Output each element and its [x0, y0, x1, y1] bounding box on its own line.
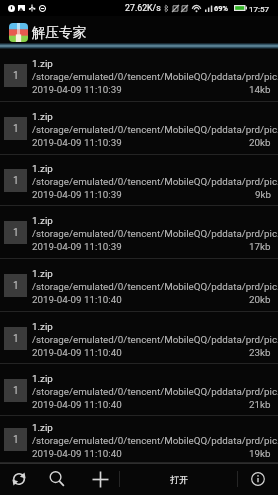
staticText: 1.zip: [32, 268, 53, 279]
button[interactable]: 1: [0, 364, 278, 416]
staticText: 2019-04-09 11:10:39: [32, 241, 122, 252]
button[interactable]: Search: [38, 463, 76, 495]
button[interactable]: 1: [0, 259, 278, 312]
staticText: /storage/emulated/0/tencent/MobileQQ/pdd…: [32, 435, 278, 446]
staticText: 20kb: [249, 137, 271, 148]
button[interactable]: 1: [0, 206, 278, 259]
staticText: 1.zip: [32, 215, 53, 226]
button[interactable]: 1: [0, 49, 278, 102]
staticText: 1: [13, 123, 19, 135]
button[interactable]: 1: [0, 416, 278, 463]
staticText: /storage/emulated/0/tencent/MobileQQ/pdd…: [32, 334, 278, 345]
staticText: 1: [13, 385, 19, 397]
staticText: 1.zip: [32, 422, 53, 433]
staticText: 21kb: [249, 399, 271, 410]
staticText: 1: [13, 70, 19, 82]
staticText: 14kb: [249, 84, 271, 95]
staticText: 23kb: [249, 347, 271, 358]
staticText: 1: [13, 333, 19, 345]
button[interactable]: Refresh: [0, 463, 38, 495]
staticText: 2019-04-09 11:10:39: [32, 137, 122, 148]
staticText: 2019-04-09 11:10:39: [32, 189, 122, 200]
button[interactable]: 1: [0, 102, 278, 155]
staticText: 1.zip: [32, 111, 53, 122]
staticText: 27.62K/s: [125, 3, 161, 13]
staticText: 1: [13, 280, 19, 292]
staticText: /storage/emulated/0/tencent/MobileQQ/pdd…: [32, 281, 278, 292]
staticText: /storage/emulated/0/tencent/MobileQQ/pdd…: [32, 176, 278, 187]
staticText: 解压专家: [32, 24, 86, 41]
button[interactable]: 打开: [120, 463, 237, 495]
button[interactable]: 1: [0, 155, 278, 206]
staticText: 1.zip: [32, 321, 53, 332]
staticText: 1: [13, 227, 19, 239]
staticText: 2019-04-09 11:10:39: [32, 84, 122, 95]
staticText: 1.zip: [32, 163, 53, 174]
staticText: 1.zip: [32, 58, 53, 69]
staticText: 2019-04-09 11:10:40: [32, 399, 122, 410]
staticText: 1: [13, 175, 19, 187]
staticText: 9kb: [255, 189, 271, 200]
staticText: /storage/emulated/0/tencent/MobileQQ/pdd…: [32, 124, 278, 135]
staticText: 2019-04-09 11:10:40: [32, 448, 122, 459]
staticText: 19kb: [249, 448, 271, 459]
staticText: 20kb: [249, 294, 271, 305]
staticText: 1.zip: [32, 373, 53, 384]
staticText: /storage/emulated/0/tencent/MobileQQ/pdd…: [32, 71, 278, 82]
staticText: 1: [13, 434, 19, 446]
staticText: /storage/emulated/0/tencent/MobileQQ/pdd…: [32, 386, 278, 397]
staticText: 打开: [170, 474, 188, 485]
button[interactable]: Add: [76, 463, 119, 495]
staticText: 17kb: [249, 241, 271, 252]
staticText: 2019-04-09 11:10:40: [32, 347, 122, 358]
button[interactable]: Info: [238, 463, 278, 495]
staticText: 69%: [214, 4, 228, 13]
staticText: /storage/emulated/0/tencent/MobileQQ/pdd…: [32, 228, 278, 239]
button[interactable]: 1: [0, 312, 278, 364]
staticText: 2019-04-09 11:10:40: [32, 294, 122, 305]
staticText: 17:57: [249, 4, 270, 13]
